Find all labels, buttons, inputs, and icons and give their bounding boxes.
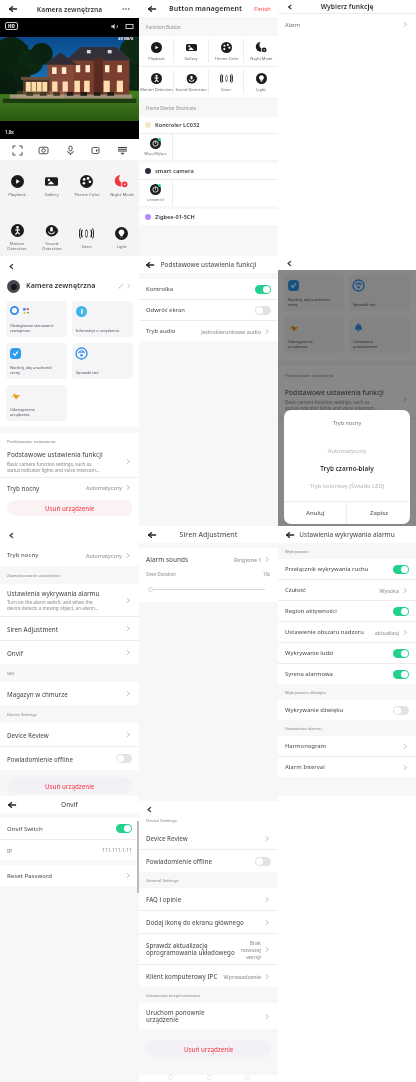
button[interactable]: Przełącznik wykrywania ruchu (278, 559, 416, 580)
button[interactable]: Back (6, 799, 18, 811)
button[interactable]: Powiadomienie offline (0, 747, 139, 770)
button[interactable]: Back (284, 1, 295, 12)
button[interactable]: Back (6, 2, 20, 16)
button[interactable]: Onvif (0, 641, 139, 664)
button[interactable]: Harmonogram (278, 736, 416, 757)
button[interactable]: Night Mode (104, 175, 139, 197)
button[interactable]: Usuń urządzenie (7, 500, 132, 516)
button[interactable]: Kontrolka (139, 279, 278, 300)
button[interactable]: Back (145, 528, 158, 541)
button[interactable]: Włącz/Wyłącz (139, 134, 172, 160)
button[interactable] (393, 565, 409, 574)
button[interactable]: Siren Adjustment (0, 617, 139, 641)
button[interactable]: Light (244, 73, 278, 92)
button[interactable]: Onvif Switch (0, 818, 139, 840)
button[interactable]: Navigation item (240, 1075, 254, 1082)
button[interactable]: Device Review (0, 723, 139, 747)
button[interactable]: Reset Password (0, 865, 139, 886)
button[interactable]: Naciśnij, aby uruchomić sceny (6, 343, 67, 379)
button[interactable]: Back (145, 2, 158, 15)
button[interactable]: Finish (253, 5, 272, 13)
button[interactable]: Motion Detection (139, 73, 173, 92)
button[interactable]: Playback (139, 42, 173, 61)
button[interactable] (393, 670, 409, 679)
button[interactable]: Alarm (278, 14, 416, 35)
button[interactable]: Region aktywności (278, 601, 416, 622)
button[interactable]: Ustawienia powiadomień (349, 317, 410, 353)
button[interactable]: Powiadomienie offline (139, 850, 278, 872)
button[interactable]: Device Review (139, 827, 278, 850)
button[interactable]: Motion Detection (0, 224, 34, 251)
button[interactable]: Ustawienie obszaru nadzoru (278, 622, 416, 643)
button[interactable]: Back (284, 529, 296, 541)
button[interactable]: Mute (110, 22, 119, 31)
button[interactable]: Ustawienia wykrywania alarmu (0, 584, 139, 617)
button[interactable]: Syrena alarmowa (278, 664, 416, 684)
button[interactable] (393, 706, 409, 715)
button[interactable]: Record (87, 141, 105, 159)
button[interactable]: Odwróć ekran (139, 300, 278, 321)
button[interactable]: Back (5, 260, 17, 272)
button[interactable]: Czułość (278, 580, 416, 601)
button[interactable]: Udostępnione urządzenia (284, 317, 344, 353)
button[interactable]: Gallery (34, 175, 69, 197)
button[interactable]: Usuń urządzenie (146, 1040, 271, 1057)
button[interactable]: i (72, 301, 133, 337)
button[interactable]: Snapshot (34, 141, 52, 159)
button[interactable]: Alarm Interval (278, 757, 416, 777)
button[interactable]: Tryb nocny (0, 478, 139, 497)
button[interactable]: Playback (0, 175, 34, 197)
button[interactable]: Anuluj (284, 502, 346, 524)
button[interactable]: HD (8, 23, 15, 29)
button[interactable]: Podstawowe ustawienia funkcji (278, 381, 416, 419)
button[interactable]: Wykrywanie ludzi (278, 643, 416, 664)
button[interactable]: Usuń urządzenie (7, 777, 132, 794)
button[interactable]: Talk (61, 141, 79, 159)
button[interactable]: More (113, 141, 131, 159)
button[interactable]: Siren (69, 227, 104, 249)
button[interactable]: Dodaj ikonę do ekranu głównego (139, 911, 278, 934)
button[interactable]: Magazyn w chmurze (0, 682, 139, 705)
button[interactable] (255, 857, 271, 866)
button[interactable]: Back (283, 257, 295, 269)
button[interactable]: Tryb nocny (278, 419, 416, 441)
button[interactable]: Edit (116, 281, 126, 291)
button[interactable] (255, 285, 271, 294)
button[interactable]: FAQ i opinie (139, 888, 278, 911)
button[interactable]: Fullscreen (8, 141, 26, 159)
button[interactable]: Naciśnij, aby uruchomić sceny (284, 275, 344, 311)
button[interactable]: Obsługiwane sterowanie zewnętrzne (6, 301, 67, 337)
button[interactable]: Sprawdź sieć (349, 275, 410, 311)
button[interactable] (393, 607, 409, 616)
button[interactable]: Uruchom ponownie urządzenie (139, 1003, 278, 1029)
button[interactable]: Tryb nocny (0, 544, 139, 566)
button[interactable]: Wykrywanie dźwięku (278, 700, 416, 720)
button[interactable]: Sound Detection (34, 224, 69, 251)
button[interactable]: Podstawowe ustawienia funkcji (0, 446, 139, 478)
button[interactable] (393, 649, 409, 658)
button[interactable]: Theme Color (209, 42, 243, 61)
button[interactable]: Udostępnione urządzenia (6, 385, 67, 421)
button[interactable]: Sprawdź aktualizację oprogramowania ukła… (139, 934, 278, 965)
button[interactable]: More options (119, 2, 133, 16)
button[interactable]: Full screen (125, 22, 134, 31)
button[interactable]: Navigation item (163, 1075, 177, 1082)
button[interactable]: Back (144, 804, 155, 815)
button[interactable]: Night Mode (244, 42, 278, 61)
button[interactable] (116, 754, 132, 763)
button[interactable]: unnamed (139, 180, 172, 206)
button[interactable]: Gallery (174, 42, 208, 61)
button[interactable]: Theme Color (69, 175, 104, 197)
button[interactable]: Sprawdź sieć (72, 343, 133, 379)
button[interactable] (116, 824, 132, 833)
button[interactable]: Navigation item (202, 1075, 216, 1082)
button[interactable]: Light (104, 227, 139, 249)
button[interactable]: Alarm sounds (146, 555, 271, 564)
button[interactable]: Back (144, 259, 156, 271)
button[interactable]: Siren (209, 73, 243, 92)
button[interactable]: Zapisz (347, 502, 410, 524)
button[interactable]: Klient komputerowy IPC (139, 965, 278, 987)
button[interactable] (255, 306, 271, 315)
button[interactable]: Tryb audio (139, 321, 278, 341)
button[interactable]: Back (5, 529, 17, 541)
